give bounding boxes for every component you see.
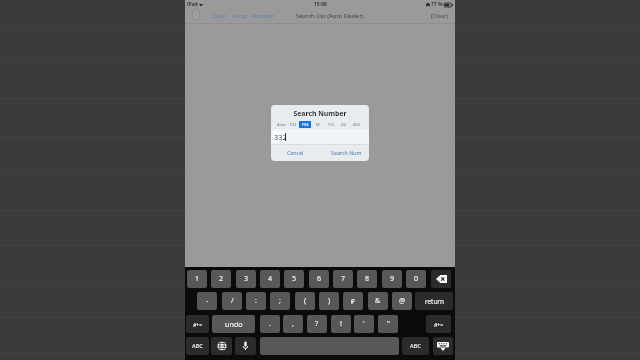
staticText: !	[340, 319, 342, 329]
button[interactable]: 4	[260, 270, 280, 288]
button[interactable]: ;	[270, 292, 290, 310]
button[interactable]: return	[415, 292, 453, 310]
button[interactable]: Fuzzy	[231, 12, 248, 20]
staticText: 464	[353, 122, 360, 127]
staticText: G2	[341, 122, 347, 127]
button[interactable]: Change keyboard	[211, 337, 232, 355]
staticText: #+=	[193, 321, 203, 328]
button[interactable]: Number	[251, 12, 275, 20]
staticText: 9	[390, 274, 395, 284]
button[interactable]: (	[295, 292, 315, 310]
staticText: Search List (Auto Dealer)	[296, 12, 364, 20]
staticText: Search Num	[331, 149, 362, 156]
staticText: ?	[315, 319, 319, 329]
button[interactable]: ABC	[186, 337, 209, 355]
button[interactable]: 9	[382, 270, 402, 288]
staticText: (	[304, 296, 307, 306]
staticText: Number	[252, 12, 274, 20]
button[interactable]: @	[392, 292, 412, 310]
staticText: &	[375, 296, 381, 306]
staticText: Fuzzy	[232, 12, 247, 20]
button[interactable]: 2	[211, 270, 231, 288]
button[interactable]: 464	[350, 121, 363, 128]
staticText: :	[255, 296, 257, 306]
button[interactable]: 0	[406, 270, 426, 288]
staticText: "	[387, 319, 390, 329]
staticText: @	[399, 296, 406, 306]
button[interactable]: 7	[333, 270, 353, 288]
staticText: 4	[268, 274, 273, 284]
button[interactable]: 3	[236, 270, 256, 288]
button[interactable]: 5	[284, 270, 304, 288]
staticText: 0	[414, 274, 419, 284]
staticText: -	[206, 296, 209, 306]
button[interactable]: Bookmarks	[192, 9, 200, 20]
button[interactable]: 6	[309, 270, 329, 288]
button[interactable]: Cancel	[283, 144, 308, 161]
button[interactable]: Search Num	[327, 144, 365, 161]
staticText: #+=	[434, 321, 444, 328]
staticText: 2	[219, 274, 224, 284]
button[interactable]: F93	[299, 121, 311, 128]
staticText: 1	[195, 274, 200, 284]
button[interactable]: #+=	[426, 315, 451, 333]
staticText: 116	[327, 122, 334, 127]
staticText: ;	[279, 296, 281, 306]
staticText: 332	[274, 132, 287, 142]
button[interactable]: )	[319, 292, 339, 310]
button[interactable]: 8	[357, 270, 377, 288]
staticText: Auto	[277, 122, 286, 127]
staticText: F32	[290, 122, 297, 127]
button[interactable]: &	[368, 292, 388, 310]
button[interactable]: :	[246, 292, 266, 310]
staticText: undo	[225, 319, 243, 329]
button[interactable]: /	[222, 292, 242, 310]
staticText: Cancel	[287, 149, 304, 156]
button[interactable]: (Clear)	[428, 9, 450, 23]
staticText: Search Number	[271, 109, 369, 118]
button[interactable]: ABC	[402, 337, 429, 355]
staticText: ₽	[351, 297, 355, 306]
button[interactable]: -	[197, 292, 217, 310]
button[interactable]: '	[354, 315, 374, 333]
staticText: iPad	[187, 1, 198, 8]
button[interactable]: G2	[337, 121, 350, 128]
button[interactable]: .	[260, 315, 280, 333]
button[interactable]: F32	[287, 121, 299, 128]
staticText: ,	[292, 319, 294, 329]
button[interactable]: Dictate	[235, 337, 256, 355]
button[interactable]: Auto	[275, 121, 287, 128]
staticText: M	[316, 122, 320, 127]
staticText: 7	[341, 274, 346, 284]
button[interactable]: ?	[307, 315, 327, 333]
staticText: F93	[302, 122, 309, 127]
staticText: 8	[365, 274, 370, 284]
staticText: (Clear)	[431, 12, 448, 20]
staticText: 77 %	[431, 1, 443, 8]
staticText: ABC	[410, 342, 421, 350]
button[interactable]: undo	[212, 315, 255, 333]
button[interactable]: Clear	[212, 12, 228, 20]
staticText: '	[363, 319, 365, 329]
button[interactable]: ,	[283, 315, 303, 333]
staticText: /	[231, 296, 234, 306]
button[interactable]: M	[311, 121, 324, 128]
staticText: return	[425, 297, 444, 306]
staticText: 5	[292, 274, 297, 284]
button[interactable]: Hide keyboard	[433, 337, 453, 355]
staticText: ABC	[192, 342, 203, 350]
staticText: .	[269, 319, 271, 329]
staticText: )	[328, 296, 331, 306]
staticText: 6	[317, 274, 322, 284]
staticText: 3	[244, 274, 249, 284]
button[interactable]: ₽	[343, 292, 363, 310]
button[interactable]: "	[378, 315, 398, 333]
button[interactable]: #+=	[186, 315, 209, 333]
button[interactable]: 116	[324, 121, 337, 128]
button[interactable]: Delete	[431, 270, 451, 288]
staticText: 15:08	[314, 1, 327, 8]
staticText: Clear	[213, 12, 227, 20]
button[interactable]: 1	[187, 270, 207, 288]
button[interactable]: !	[331, 315, 351, 333]
